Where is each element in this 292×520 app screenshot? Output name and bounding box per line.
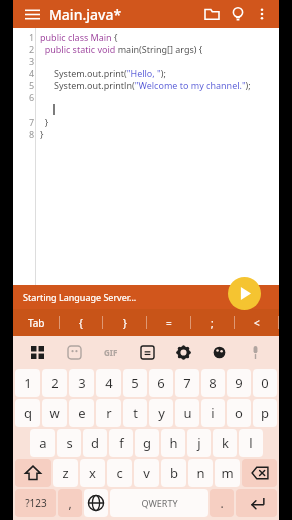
button[interactable]: l [239,429,263,457]
button[interactable]: ?123 [15,489,56,517]
button[interactable]: 2 [42,369,67,397]
staticText: 0 [261,374,269,392]
staticText: n [196,464,205,482]
button[interactable]: s [57,429,81,457]
button[interactable]: h [161,429,185,457]
staticText: w [49,404,60,422]
button[interactable]: 3 [69,369,94,397]
button[interactable]: QWERTY [110,489,208,517]
button[interactable]: t [123,399,147,427]
staticText: q [24,404,32,422]
staticText: 2 [51,374,59,392]
staticText: 2 [29,43,35,55]
button[interactable]: GIF [93,336,129,369]
staticText: 3 [78,374,86,392]
staticText: 7 [183,374,191,392]
staticText: < [254,316,260,330]
button[interactable]: Run [228,277,261,310]
staticText: public class Main { [40,31,118,43]
button[interactable]: Open folder [199,1,225,27]
button[interactable]: Enter [236,489,277,517]
staticText: QWERTY [141,497,178,509]
staticText: b [170,464,178,482]
button[interactable]: 7 [175,369,199,397]
button[interactable]: Language [84,489,108,517]
staticText: e [78,404,86,422]
button[interactable]: 0 [253,369,277,397]
staticText: 6 [29,91,35,103]
staticText: 7 [29,116,35,128]
button[interactable]: v [134,459,159,487]
button[interactable]: Hints [225,1,251,27]
button[interactable]: f [109,429,133,457]
button[interactable]: d [83,429,107,457]
staticText: y [158,404,165,422]
button[interactable]: 5 [123,369,147,397]
staticText: 5 [29,79,35,91]
staticText: l [249,434,253,452]
button[interactable]: , [58,489,82,517]
button[interactable]: Menu [19,1,45,27]
button[interactable]: = [147,309,190,336]
staticText: , [68,495,72,511]
button[interactable]: e [69,399,94,427]
staticText: Main.java* [49,5,122,24]
staticText: o [235,404,243,422]
button[interactable]: p [253,399,277,427]
button[interactable]: Apps [19,336,56,369]
button[interactable]: More options [251,3,273,25]
button[interactable]: 8 [201,369,225,397]
button[interactable]: Backspace [242,459,277,487]
staticText: z [62,464,69,482]
button[interactable]: 4 [96,369,121,397]
button[interactable]: y [149,399,173,427]
button[interactable]: b [161,459,186,487]
button[interactable]: x [80,459,105,487]
staticText: h [169,434,178,452]
staticText: Tab [28,316,45,330]
button[interactable]: } [103,309,146,336]
staticText: System.out.print("Hello, "); [40,67,166,79]
staticText: x [89,464,96,482]
button[interactable]: a [30,429,55,457]
staticText: 4 [105,374,113,392]
button[interactable]: . [210,489,234,517]
button[interactable]: g [135,429,159,457]
button[interactable]: Voice [237,336,273,369]
button[interactable]: Theme [201,336,237,369]
button[interactable]: z [53,459,78,487]
staticText: 3 [29,55,35,67]
button[interactable]: i [201,399,225,427]
button[interactable]: u [175,399,199,427]
staticText: t [133,404,138,422]
button[interactable]: m [215,459,240,487]
staticText: 9 [235,374,243,392]
button[interactable]: 9 [227,369,251,397]
button[interactable]: 1 [15,369,40,397]
button[interactable]: Settings [165,336,201,369]
button[interactable]: c [107,459,132,487]
staticText: 8 [209,374,217,392]
button[interactable]: j [187,429,211,457]
button[interactable]: { [60,309,102,336]
button[interactable]: o [227,399,251,427]
button[interactable]: Clipboard [129,336,165,369]
button[interactable]: q [15,399,40,427]
button[interactable]: k [213,429,237,457]
button[interactable]: 6 [149,369,173,397]
staticText: 8 [29,128,35,140]
button[interactable]: Tab [13,309,59,336]
button[interactable]: n [188,459,213,487]
button[interactable]: r [96,399,121,427]
staticText: d [91,434,99,452]
button[interactable]: < [235,309,278,336]
staticText: GIF [104,347,118,358]
button[interactable]: Sticker [56,336,93,369]
button[interactable]: Shift [15,459,51,487]
button[interactable]: w [42,399,67,427]
staticText: v [143,464,150,482]
staticText: 5 [131,374,139,392]
staticText: } [40,116,49,128]
button[interactable]: ; [191,309,234,336]
staticText: c [116,464,123,482]
